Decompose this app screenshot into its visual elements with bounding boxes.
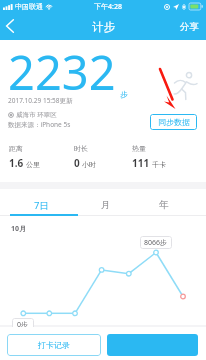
staticText: 步	[120, 90, 128, 99]
button[interactable]: 立即打卡	[107, 334, 198, 356]
staticText: 热量	[132, 144, 146, 153]
button[interactable]: 7日	[24, 195, 58, 215]
staticText: 数据来源：iPhone 5s	[8, 120, 71, 129]
staticText: 分享	[180, 21, 199, 33]
staticText: 8066步	[144, 238, 168, 248]
staticText: 月	[101, 199, 111, 211]
staticText: 年	[159, 199, 169, 211]
staticText: 下午4:28	[94, 2, 122, 12]
staticText: 中国联通	[15, 2, 43, 11]
staticText: 111	[132, 156, 150, 170]
staticText: 小时	[82, 160, 96, 169]
staticText: 同步数据	[158, 117, 190, 127]
button[interactable]: 月	[89, 195, 123, 215]
staticText: 公里	[26, 160, 40, 169]
staticText: 7日	[34, 199, 49, 212]
staticText: 2017.10.29 15:58更新	[8, 96, 73, 105]
staticText: 1.6	[9, 156, 24, 170]
button[interactable]: 打卡记录	[7, 334, 101, 356]
staticText: 10月	[11, 224, 27, 234]
staticText: 打卡记录	[38, 340, 70, 350]
staticText: 时长	[74, 144, 88, 153]
staticText: 距离	[9, 144, 23, 153]
staticText: 威海市 环翠区	[16, 110, 57, 119]
staticText: 0	[74, 156, 80, 170]
staticText: 2232	[8, 40, 116, 104]
button[interactable]: 同步数据	[150, 114, 197, 130]
button[interactable]: 年	[147, 195, 181, 215]
button[interactable]: 分享	[180, 21, 199, 33]
staticText: 计步	[92, 20, 115, 34]
staticText: 0步	[17, 320, 29, 330]
staticText: 千卡	[152, 160, 166, 169]
button[interactable]: Back	[0, 13, 22, 40]
